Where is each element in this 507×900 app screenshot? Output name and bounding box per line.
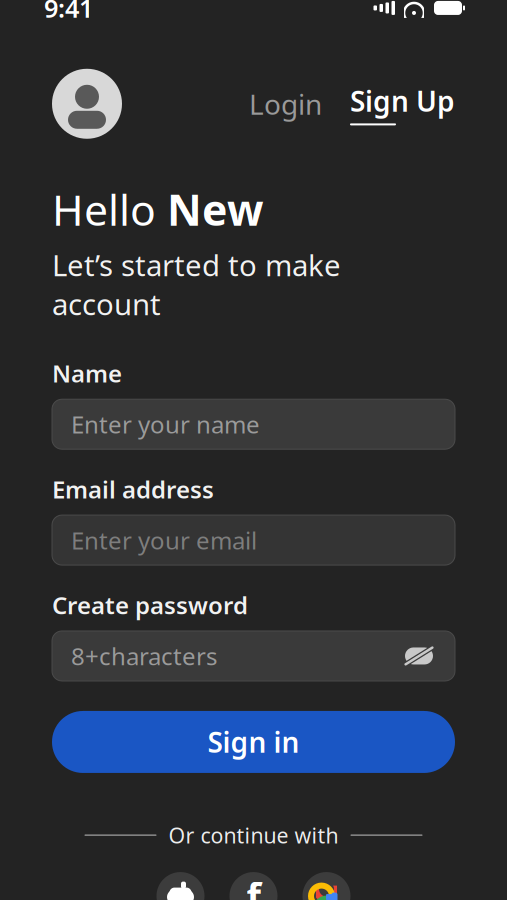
- staticText: Create password: [52, 589, 248, 621]
- button[interactable]: Continue with Google: [302, 872, 350, 900]
- button[interactable]: Sign in: [52, 711, 455, 773]
- staticText: Email address: [52, 473, 214, 505]
- button[interactable]: Sign Up: [350, 80, 455, 127]
- staticText: Login: [249, 85, 322, 122]
- button[interactable]: Continue with Facebook: [229, 871, 277, 900]
- button[interactable]: Enter your name: [52, 399, 455, 449]
- staticText: Or continue with: [168, 821, 338, 849]
- staticText: 9:41: [44, 0, 93, 25]
- staticText: f: [246, 871, 260, 900]
- staticText: Hello: [52, 181, 167, 237]
- staticText: Let’s started to make account: [52, 245, 341, 323]
- button[interactable]: Login: [243, 81, 328, 126]
- button[interactable]: 8+characters: [52, 631, 455, 681]
- staticText: Enter your name: [71, 408, 260, 440]
- button[interactable]: Continue with Apple: [156, 872, 204, 900]
- staticText: 8+characters: [71, 640, 217, 672]
- staticText: New: [167, 181, 264, 237]
- button[interactable]: Enter your email: [52, 515, 455, 565]
- staticText: Sign Up: [350, 82, 455, 119]
- staticText: Sign in: [207, 723, 299, 761]
- staticText: Name: [52, 357, 122, 389]
- staticText: Enter your email: [71, 524, 257, 556]
